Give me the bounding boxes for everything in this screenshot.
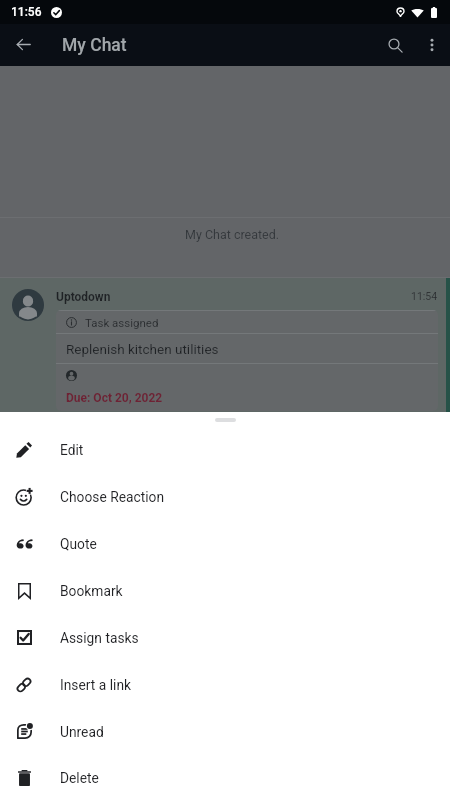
staticText: Task assigned xyxy=(85,316,159,329)
button[interactable]: Edit xyxy=(0,426,450,473)
staticText: Unread xyxy=(60,724,104,740)
staticText: Edit xyxy=(60,442,84,458)
button[interactable]: Insert a link xyxy=(0,661,450,708)
button[interactable]: Unread xyxy=(0,708,450,755)
button[interactable]: Assign tasks xyxy=(0,614,450,661)
staticText: Bookmark xyxy=(60,583,123,599)
staticText: Choose Reaction xyxy=(60,489,165,505)
staticText: 11:54 xyxy=(411,290,438,302)
staticText: Quote xyxy=(60,536,97,552)
staticText: Assign tasks xyxy=(60,630,139,646)
button[interactable]: Search xyxy=(376,26,414,64)
staticText: Insert a link xyxy=(60,677,132,693)
button[interactable]: Delete xyxy=(0,755,450,800)
staticText: My Chat xyxy=(62,35,127,56)
staticText: Uptodown xyxy=(56,290,111,304)
button[interactable]: Choose Reaction xyxy=(0,473,450,520)
button[interactable]: Quote xyxy=(0,520,450,567)
staticText: Delete xyxy=(60,770,99,786)
staticText: My Chat created. xyxy=(185,227,280,242)
button[interactable]: Bookmark xyxy=(0,567,450,614)
staticText: Replenish kitchen utilities xyxy=(66,341,219,357)
button[interactable]: Back xyxy=(8,29,38,59)
staticText: 11:56 xyxy=(11,5,42,19)
staticText: Due: Oct 20, 2022 xyxy=(66,391,163,405)
button[interactable]: More options xyxy=(414,27,450,63)
